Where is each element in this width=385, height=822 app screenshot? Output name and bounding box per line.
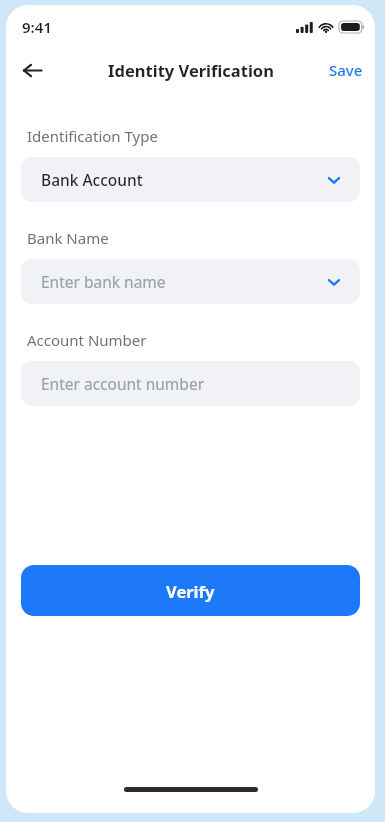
button[interactable]: Bank Account — [21, 157, 360, 202]
button[interactable]: Back — [14, 52, 50, 88]
staticText: Bank Account — [41, 169, 143, 190]
staticText: Account Number — [27, 330, 147, 350]
staticText: Enter bank name — [41, 271, 166, 292]
button[interactable]: Enter account number — [21, 361, 360, 406]
staticText: Save — [329, 60, 363, 80]
button[interactable]: Save — [325, 56, 367, 84]
staticText: 9:41 — [22, 17, 52, 37]
button[interactable]: Enter bank name — [21, 259, 360, 304]
staticText: Identification Type — [27, 126, 158, 146]
button[interactable]: Verify — [21, 565, 360, 616]
staticText: Identity Verification — [108, 59, 274, 81]
staticText: Verify — [166, 580, 215, 602]
staticText: Enter account number — [41, 373, 205, 394]
staticText: Bank Name — [27, 228, 109, 248]
